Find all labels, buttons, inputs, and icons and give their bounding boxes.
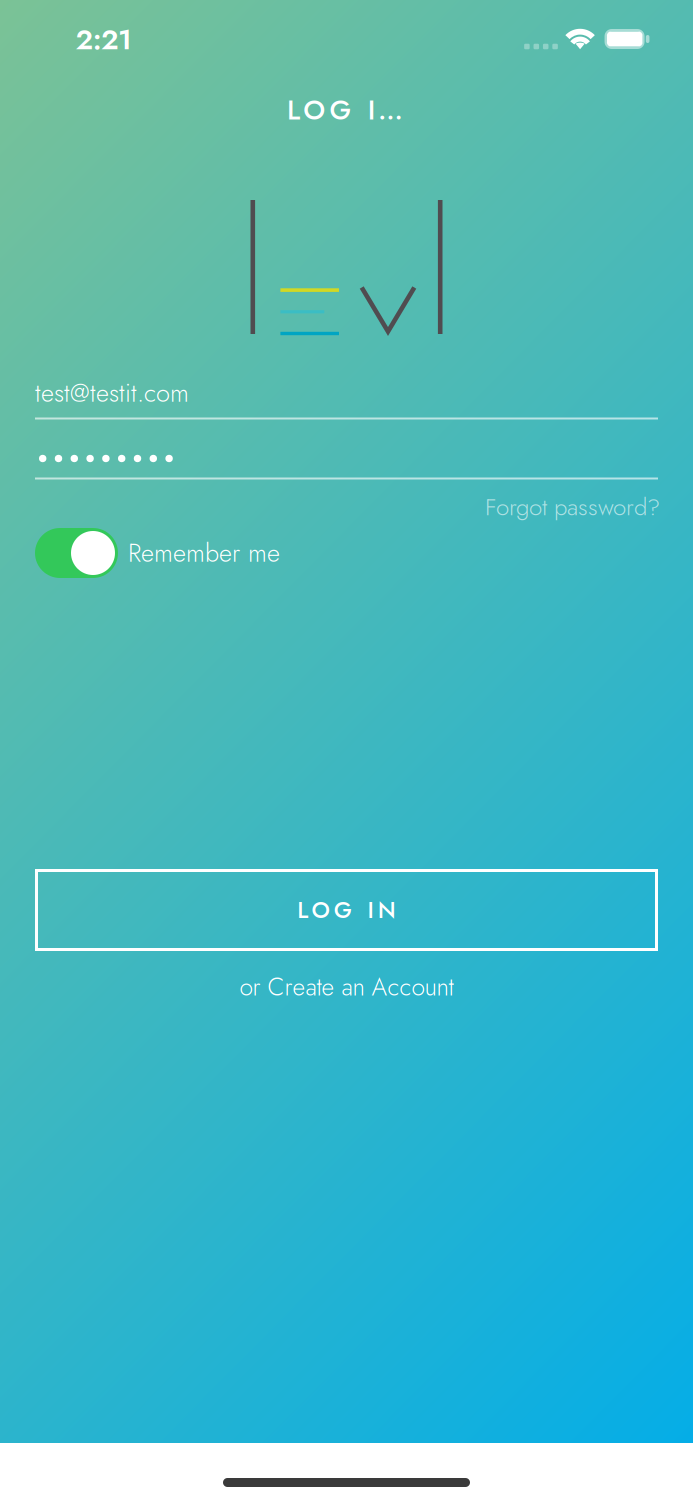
staticText: Forgot password? — [485, 490, 660, 524]
staticText: LOG IN — [297, 893, 396, 926]
staticText: or Create an Account — [239, 969, 453, 1005]
staticText: test@testit.com — [35, 375, 189, 411]
button[interactable]: LOG IN — [35, 869, 658, 951]
staticText: 2:21 — [75, 19, 132, 60]
staticText: Remember me — [128, 535, 280, 571]
button[interactable]: or Create an Account — [0, 972, 693, 1002]
button[interactable]: Forgot password? — [422, 492, 660, 522]
staticText: LOG IN — [287, 90, 401, 130]
button[interactable]: Remember me — [35, 528, 365, 578]
